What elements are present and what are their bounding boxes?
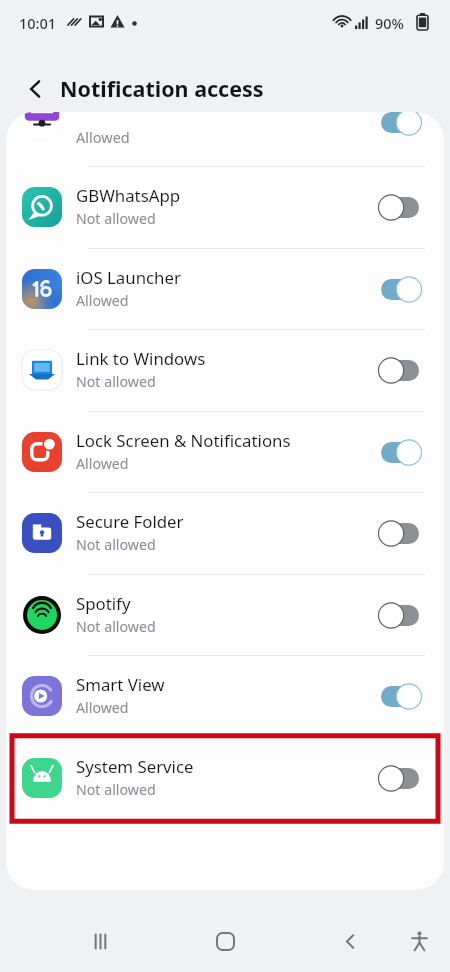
button[interactable] <box>6 329 444 411</box>
staticText: Secure Folder <box>76 510 184 533</box>
staticText: Allowed <box>76 698 129 717</box>
staticText: 90% <box>375 13 404 33</box>
button[interactable]: Allowed, on <box>377 272 425 306</box>
button[interactable]: Allowed, on <box>377 679 425 713</box>
button[interactable]: Not allowed, off <box>377 516 425 550</box>
staticText: GBWhatsApp <box>76 184 181 207</box>
button[interactable]: Not allowed, off <box>377 190 425 224</box>
staticText: System Service <box>76 755 194 778</box>
staticText: Spotify <box>76 592 131 615</box>
staticText: Not allowed <box>76 209 156 228</box>
button[interactable]: Navigate up <box>10 63 62 115</box>
button[interactable] <box>6 655 444 737</box>
staticText: Link to Windows <box>76 347 206 370</box>
button[interactable]: Not allowed, off <box>377 598 425 632</box>
staticText: Not allowed <box>76 535 156 554</box>
button[interactable] <box>6 492 444 574</box>
staticText: Not allowed <box>76 617 156 636</box>
button[interactable]: Back <box>327 918 373 964</box>
staticText: Allowed <box>76 454 129 473</box>
staticText: Allowed <box>76 127 130 147</box>
staticText: Not allowed <box>76 372 156 391</box>
staticText: Lock Screen & Notifications <box>76 429 291 452</box>
button[interactable] <box>6 248 444 330</box>
button[interactable]: Home <box>202 918 248 964</box>
button[interactable]: Accessibility <box>398 920 440 962</box>
staticText: Smart View <box>76 673 165 696</box>
button[interactable] <box>6 166 444 248</box>
staticText: 10:01 <box>19 13 57 33</box>
staticText: iOS Launcher <box>76 266 181 289</box>
button[interactable]: Recent apps <box>77 918 123 964</box>
staticText: Not allowed <box>76 780 156 799</box>
staticText: Notification access <box>60 74 264 103</box>
button[interactable]: Not allowed, off <box>377 353 425 387</box>
button[interactable]: Not allowed, off <box>377 761 425 795</box>
button[interactable]: Allowed, on <box>377 112 425 139</box>
button[interactable] <box>6 411 444 493</box>
button[interactable] <box>6 737 444 819</box>
button[interactable] <box>6 574 444 656</box>
staticText: Allowed <box>76 291 129 310</box>
button[interactable]: Allowed, on <box>377 435 425 469</box>
